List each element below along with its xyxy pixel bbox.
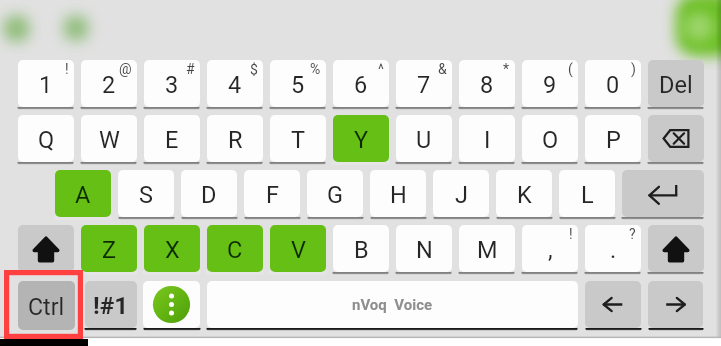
button[interactable]: D [181, 170, 237, 217]
staticText: M [477, 236, 498, 264]
staticText: W [99, 126, 120, 154]
button[interactable]: 3 [144, 60, 200, 107]
staticText: A [75, 181, 91, 209]
button[interactable]: P [585, 115, 641, 162]
button[interactable]: Ctrl [18, 281, 75, 330]
staticText: T [291, 126, 306, 154]
button[interactable]: S [118, 170, 174, 217]
button[interactable]: J [433, 170, 489, 217]
staticText: Y [354, 126, 369, 154]
button[interactable]: Shift [18, 225, 74, 272]
button[interactable]: Backspace [648, 115, 704, 162]
staticText: 4 [228, 71, 242, 99]
staticText: 0 [606, 71, 620, 99]
button[interactable]: C [207, 225, 263, 272]
staticText: I [484, 126, 491, 154]
button[interactable]: A [55, 170, 111, 217]
button[interactable]: G [307, 170, 363, 217]
staticText: 5 [291, 71, 305, 99]
button[interactable]: 4 [207, 60, 263, 107]
staticText: Ctrl [28, 293, 65, 320]
button[interactable]: N [396, 225, 452, 272]
button[interactable]: Y [333, 115, 389, 162]
staticText: 6 [354, 71, 368, 99]
staticText: X [165, 236, 180, 264]
button[interactable]: K [496, 170, 552, 217]
button[interactable]: , [522, 225, 578, 272]
staticText: Del [659, 71, 693, 99]
staticText: & [438, 61, 447, 77]
button[interactable]: B [333, 225, 389, 272]
staticText: C [227, 236, 243, 264]
staticText: !#1 [93, 291, 129, 320]
staticText: K [517, 181, 532, 209]
staticText: $ [250, 61, 258, 77]
staticText: L [581, 181, 594, 209]
button[interactable]: 1 [18, 60, 74, 107]
staticText: V [291, 236, 306, 264]
staticText: Q [38, 126, 55, 154]
button[interactable]: W [81, 115, 137, 162]
button[interactable]: X [144, 225, 200, 272]
staticText: 2 [102, 71, 116, 99]
staticText: N [416, 236, 433, 264]
staticText: E [165, 126, 179, 154]
button[interactable]: 2 [81, 60, 137, 107]
staticText: % [310, 61, 321, 77]
button[interactable]: !#1 [85, 281, 137, 328]
staticText: Z [102, 236, 117, 264]
staticText: ( [568, 61, 573, 77]
button[interactable]: Shift [648, 225, 704, 272]
button[interactable]: E [144, 115, 200, 162]
staticText: * [503, 61, 510, 77]
button[interactable]: Move cursor right [648, 281, 703, 328]
button[interactable]: nVoq voice menu [143, 281, 200, 328]
button[interactable]: 8 [459, 60, 515, 107]
button[interactable]: O [522, 115, 578, 162]
button[interactable]: M [459, 225, 515, 272]
button[interactable]: L [559, 170, 615, 217]
staticText: 9 [543, 71, 557, 99]
staticText: ! [65, 61, 69, 77]
button[interactable]: V [270, 225, 326, 272]
button[interactable]: Del [648, 60, 704, 107]
button[interactable]: Z [81, 225, 137, 272]
staticText: 3 [165, 71, 179, 99]
staticText: J [455, 181, 468, 209]
button[interactable]: Enter [622, 170, 704, 217]
staticText: , [548, 236, 553, 264]
staticText: 7 [417, 71, 431, 99]
staticText: D [201, 181, 217, 209]
staticText: G [327, 181, 344, 209]
button[interactable]: 6 [333, 60, 389, 107]
button[interactable]: T [270, 115, 326, 162]
button[interactable]: 5 [270, 60, 326, 107]
button[interactable]: 9 [522, 60, 578, 107]
staticText: R [228, 126, 243, 154]
staticText: 1 [39, 71, 53, 99]
button[interactable]: . [585, 225, 641, 272]
button[interactable]: R [207, 115, 263, 162]
button[interactable]: H [370, 170, 426, 217]
staticText: S [139, 181, 153, 209]
button[interactable]: F [244, 170, 300, 217]
staticText: O [542, 126, 559, 154]
staticText: H [390, 181, 407, 209]
button[interactable]: nVoq Voice [207, 281, 578, 328]
staticText: ^ [378, 61, 384, 77]
staticText: nVoq Voice [352, 296, 433, 314]
staticText: @ [119, 61, 132, 77]
button[interactable]: 0 [585, 60, 641, 107]
button[interactable]: Q [18, 115, 74, 162]
button[interactable]: Move cursor left [585, 281, 641, 328]
staticText: ? [629, 226, 636, 242]
staticText: . [610, 236, 617, 264]
staticText: F [266, 181, 279, 209]
staticText: P [606, 126, 621, 154]
button[interactable]: 7 [396, 60, 452, 107]
staticText: ) [631, 61, 636, 77]
button[interactable]: I [459, 115, 515, 162]
staticText: # [186, 61, 195, 77]
button[interactable]: U [396, 115, 452, 162]
staticText: B [354, 236, 369, 264]
